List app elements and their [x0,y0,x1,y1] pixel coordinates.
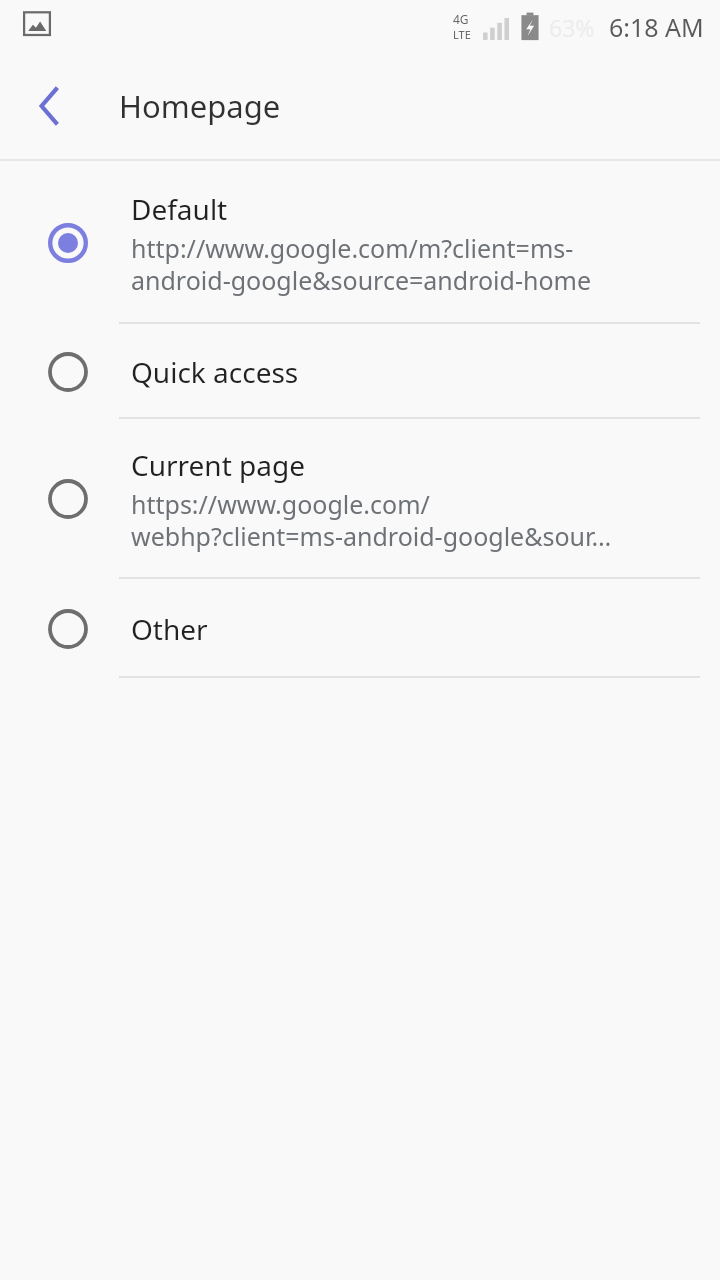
staticText: http://www.google.com/m?client=ms- andro… [131,231,592,297]
button[interactable]: Default [0,162,720,324]
staticText: 4G [453,11,469,27]
staticText: Quick access [131,353,299,391]
staticText: 6:18 AM [609,10,704,44]
staticText: Homepage [119,85,281,127]
staticText: LTE [453,27,471,42]
staticText: https://www.google.com/ webhp?client=ms-… [131,487,612,553]
staticText: Default [131,190,228,228]
staticText: Other [131,610,208,648]
button[interactable]: Quick access [0,324,720,419]
staticText: Current page [131,446,305,484]
button[interactable]: Current page [0,419,720,579]
button[interactable]: Other [0,579,720,678]
button[interactable]: Back [18,74,82,138]
staticText: 63% [549,12,595,43]
